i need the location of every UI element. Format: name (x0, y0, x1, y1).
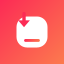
button[interactable]: Download (0, 0, 64, 64)
